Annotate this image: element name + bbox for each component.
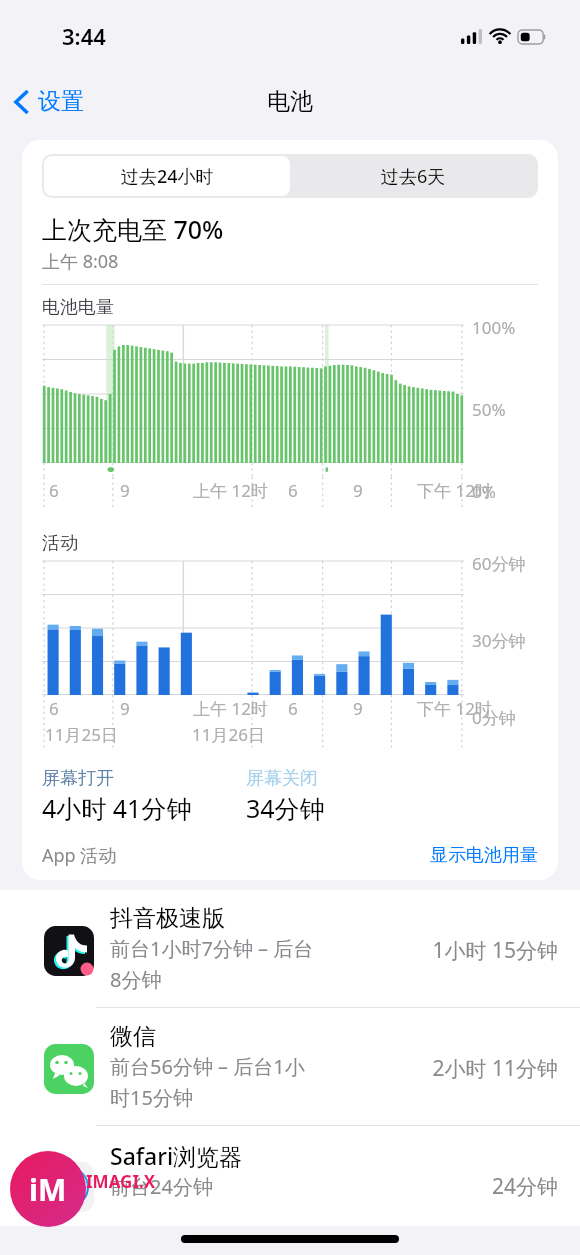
staticText: 0分钟 [472, 706, 516, 729]
staticText: 2小时 11分钟 [432, 1054, 558, 1083]
button[interactable]: 设置 [0, 81, 94, 122]
staticText: 3:44 [62, 21, 106, 51]
staticText: 显示电池用量 [430, 844, 538, 867]
staticText: 9 [353, 479, 363, 502]
staticText: 上午 12时 [193, 697, 268, 720]
staticText: 9 [120, 479, 130, 502]
staticText: 0% [472, 480, 496, 503]
button[interactable]: 微信 [0, 1008, 580, 1125]
staticText: 前台24分钟 [110, 1173, 213, 1200]
staticText: 屏幕关闭 [246, 767, 318, 790]
staticText: Safari浏览器 [110, 1140, 243, 1171]
staticText: 60分钟 [472, 552, 526, 575]
staticText: 过去6天 [381, 164, 446, 189]
staticText: 50% [472, 398, 506, 421]
staticText: 前台56分钟 – 后台1小 时15分钟 [110, 1053, 305, 1111]
staticText: 设置 [38, 87, 84, 116]
staticText: 屏幕打开 [42, 767, 114, 790]
staticText: 下午 12时 [417, 479, 492, 502]
button[interactable]: 过去24小时 [44, 156, 290, 196]
staticText: 6 [288, 479, 298, 502]
staticText: 1小时 15分钟 [432, 936, 558, 965]
staticText: 抖音极速版 [110, 904, 225, 933]
button[interactable]: Safari浏览器 [0, 1126, 580, 1226]
staticText: 6 [49, 479, 59, 502]
staticText: 11月25日 [45, 723, 118, 746]
staticText: App 活动 [42, 843, 117, 868]
staticText: IMAGI.X [86, 1170, 156, 1193]
staticText: 上午 12时 [193, 479, 268, 502]
staticText: 电池 [267, 87, 313, 116]
staticText: 9 [120, 697, 130, 720]
staticText: 活动 [42, 532, 78, 555]
staticText: 上次充电至 70% [42, 212, 224, 246]
staticText: 微信 [110, 1022, 156, 1051]
staticText: 11月26日 [192, 723, 265, 746]
staticText: 电池电量 [42, 296, 114, 319]
button[interactable]: 抖音极速版 [0, 890, 580, 1007]
staticText: 6 [49, 697, 59, 720]
staticText: 24分钟 [491, 1172, 558, 1201]
staticText: 30分钟 [472, 629, 526, 652]
staticText: 前台1小时7分钟 – 后台 8分钟 [110, 935, 314, 993]
button[interactable]: 过去6天 [290, 156, 536, 196]
staticText: 下午 12时 [417, 697, 492, 720]
staticText: 4小时 41分钟 [42, 791, 192, 825]
staticText: 6 [288, 697, 298, 720]
staticText: 上午 8:08 [42, 249, 119, 274]
staticText: iM [29, 1169, 67, 1210]
staticText: 34分钟 [246, 791, 325, 825]
staticText: 100% [472, 316, 516, 339]
button[interactable]: 显示电池用量 [430, 844, 538, 867]
staticText: 9 [353, 697, 363, 720]
staticText: 过去24小时 [121, 164, 214, 189]
